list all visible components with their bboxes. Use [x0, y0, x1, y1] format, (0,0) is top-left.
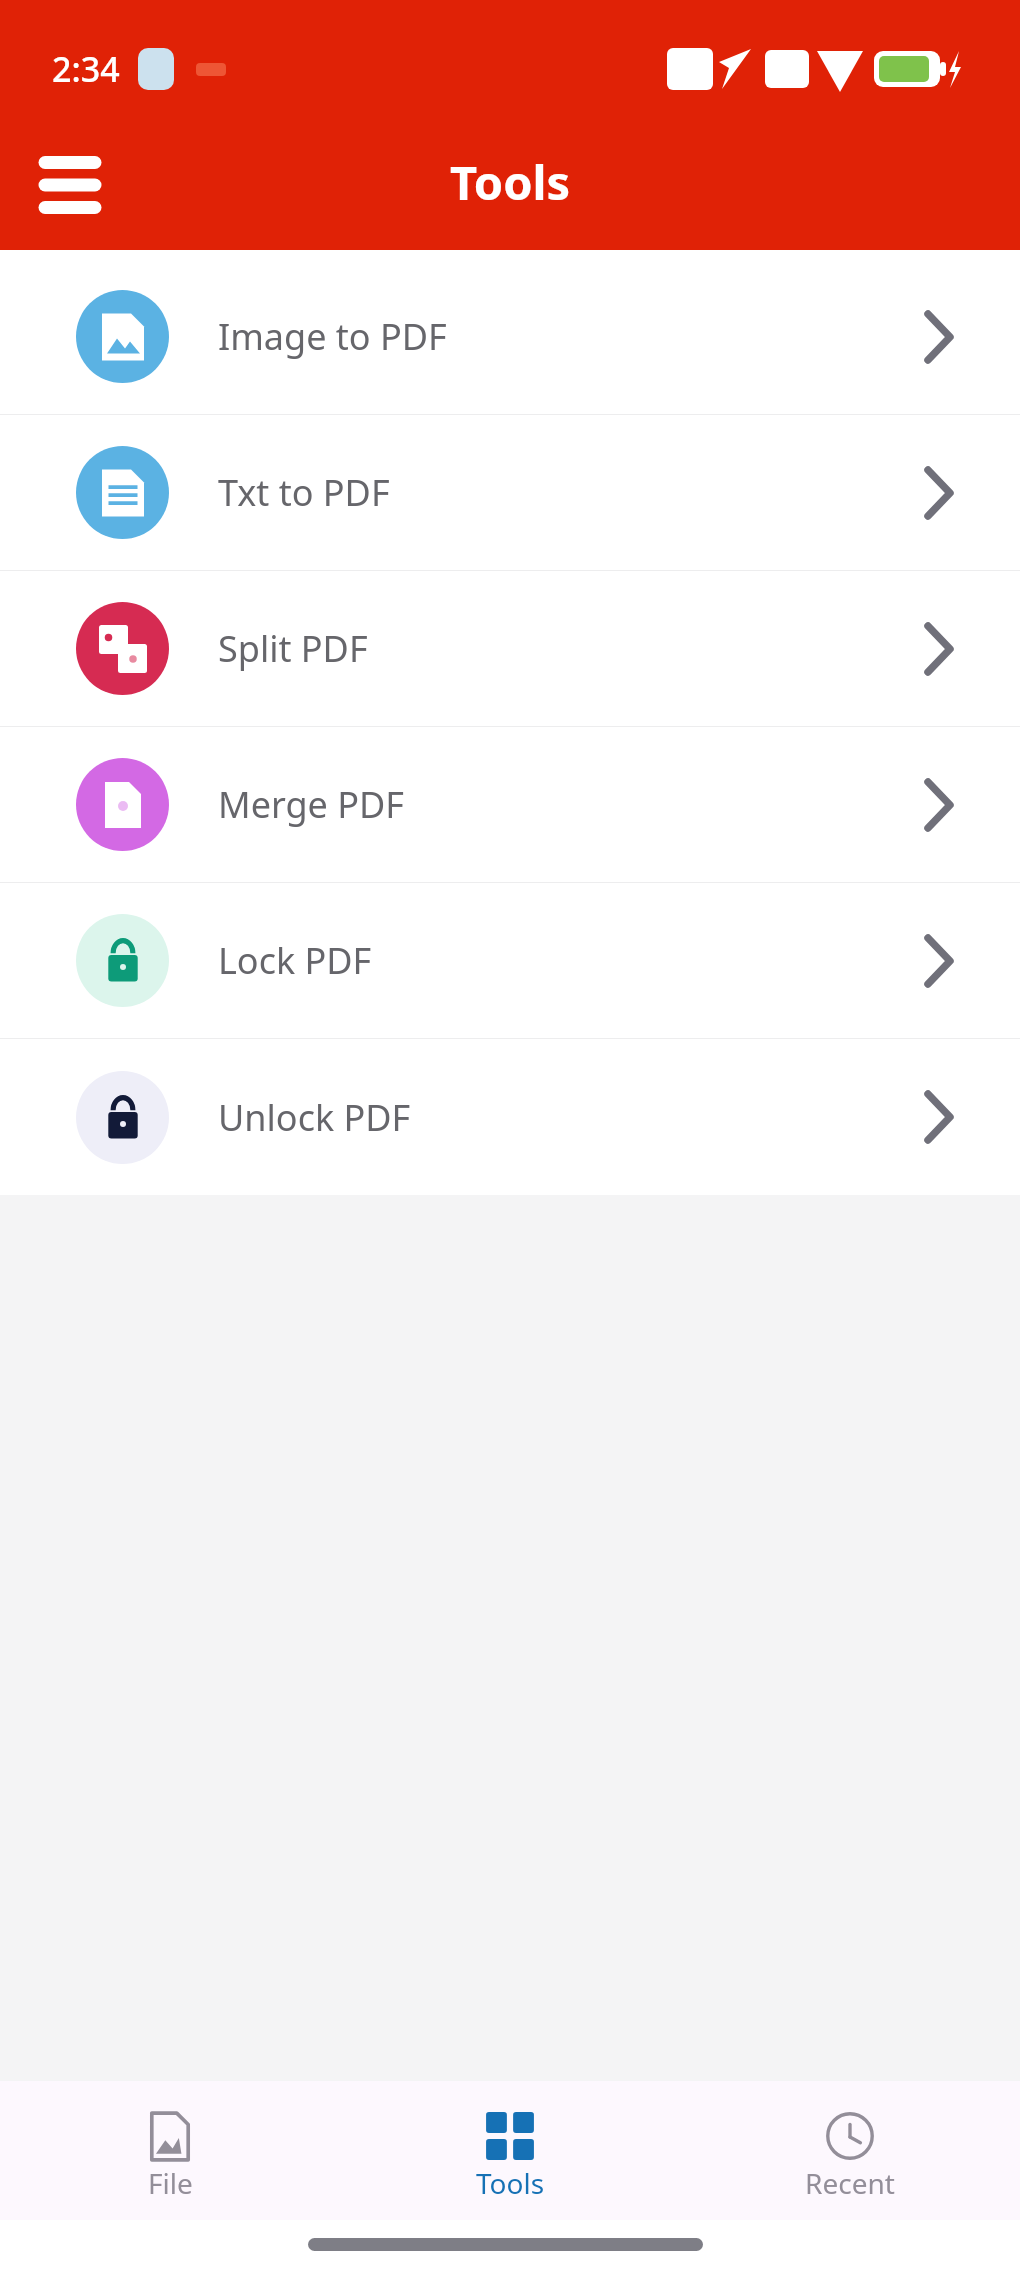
button[interactable]: Image to PDF [0, 259, 1020, 414]
button[interactable]: Lock PDF [0, 883, 1020, 1038]
button[interactable]: Txt to PDF [0, 415, 1020, 570]
staticText: Tools [450, 150, 571, 214]
button[interactable]: Menu [22, 137, 118, 233]
button[interactable]: Split PDF [0, 571, 1020, 726]
button[interactable]: Recent [680, 2081, 1020, 2220]
staticText: Unlock PDF [218, 1093, 411, 1142]
staticText: Image to PDF [218, 312, 447, 361]
staticText: Split PDF [218, 624, 368, 673]
button[interactable]: File [0, 2081, 340, 2220]
button[interactable]: Unlock PDF [0, 1039, 1020, 1195]
button[interactable]: Tools [340, 2081, 680, 2220]
staticText: Recent [805, 2164, 895, 2202]
staticText: Merge PDF [218, 780, 405, 829]
staticText: Tools [476, 2164, 545, 2202]
staticText: Lock PDF [218, 936, 372, 985]
staticText: Txt to PDF [218, 468, 390, 517]
button[interactable]: Merge PDF [0, 727, 1020, 882]
staticText: File [148, 2164, 193, 2202]
staticText: 2:34 [52, 46, 120, 92]
